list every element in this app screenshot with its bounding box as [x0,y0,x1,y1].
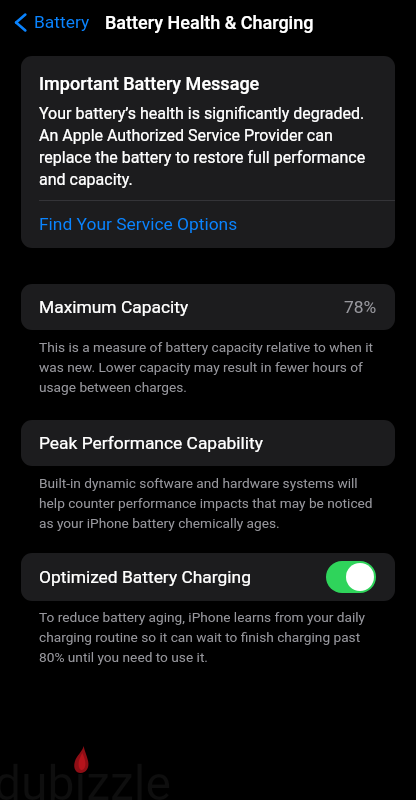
staticText: Peak Performance Capability [39,432,263,454]
staticText: 78% [344,296,377,318]
staticText: Your battery’s health is significantly d… [39,102,381,190]
staticText: This is a measure of battery capacity re… [39,336,384,396]
staticText: Important Battery Message [39,73,260,94]
staticText: Built-in dynamic software and hardware s… [39,472,384,532]
button[interactable]: Find Your Service Options [21,201,395,248]
button[interactable]: Optimized Battery Charging toggle [326,561,376,593]
staticText: Battery Health & Charging [105,12,314,34]
button[interactable]: Peak Performance Capability [21,420,395,466]
staticText: Maximum Capacity [39,296,189,318]
button[interactable]: Maximum Capacity [21,284,395,330]
staticText: To reduce battery aging, iPhone learns f… [39,606,384,666]
staticText: Battery [34,11,90,33]
staticText: Optimized Battery Charging [39,566,251,588]
staticText: dubizzle [0,755,171,800]
staticText: Find Your Service Options [39,213,238,235]
button[interactable]: Battery [11,8,94,36]
